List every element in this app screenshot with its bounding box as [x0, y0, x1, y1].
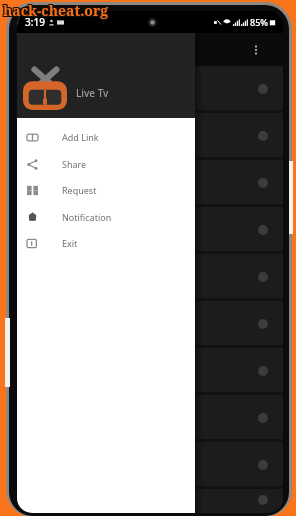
- button[interactable]: [17, 442, 283, 489]
- staticText: hack-cheat.org: [3, 2, 109, 21]
- button[interactable]: [17, 66, 283, 113]
- staticText: hack-cheat.org: [3, 1, 109, 20]
- button[interactable]: Request: [17, 177, 195, 203]
- staticText: hack-cheat.org: [4, 2, 110, 21]
- button[interactable]: [17, 113, 283, 160]
- staticText: Notification: [62, 211, 112, 223]
- staticText: 3:19: [25, 15, 45, 29]
- staticText: hack-cheat.org: [3, 0, 109, 19]
- button[interactable]: [17, 301, 283, 348]
- staticText: hack-cheat.org: [2, 0, 108, 19]
- button[interactable]: More options: [245, 39, 267, 61]
- button[interactable]: [17, 254, 283, 301]
- staticText: Live Tv: [76, 86, 109, 100]
- staticText: 85%: [250, 16, 268, 28]
- staticText: hack-cheat.org: [2, 1, 108, 20]
- button[interactable]: Add Link: [17, 124, 195, 150]
- staticText: Share: [62, 158, 87, 170]
- button[interactable]: [17, 160, 283, 207]
- staticText: Request: [62, 184, 97, 196]
- button[interactable]: [17, 348, 283, 395]
- staticText: hack-cheat.org: [4, 1, 110, 20]
- staticText: Exit: [62, 237, 78, 249]
- button[interactable]: Exit: [17, 230, 195, 256]
- staticText: Add Link: [62, 131, 99, 143]
- button[interactable]: Share: [17, 151, 195, 177]
- button[interactable]: [17, 207, 283, 254]
- button[interactable]: [17, 489, 283, 513]
- staticText: hack-cheat.org: [2, 2, 108, 21]
- button[interactable]: Notification: [17, 204, 195, 230]
- button[interactable]: [17, 395, 283, 442]
- staticText: hack-cheat.org: [4, 0, 110, 19]
